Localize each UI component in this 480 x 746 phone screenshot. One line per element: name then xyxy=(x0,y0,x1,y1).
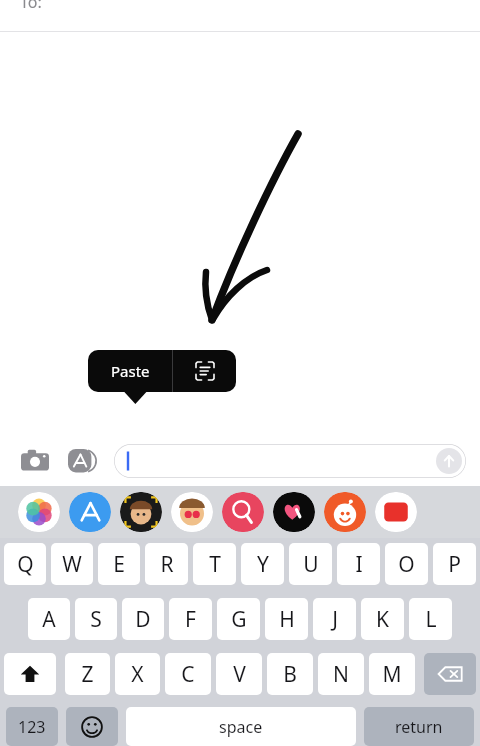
button[interactable]: App 4 xyxy=(222,492,264,532)
button[interactable]: Apps xyxy=(66,444,100,478)
button[interactable]: App 5 xyxy=(273,492,315,532)
staticText: M xyxy=(382,660,402,689)
staticText: Paste xyxy=(111,361,150,381)
button[interactable]: Scan text xyxy=(173,350,236,392)
button[interactable]: D xyxy=(122,598,164,640)
button[interactable]: O xyxy=(385,543,428,585)
staticText: R xyxy=(160,550,174,579)
button[interactable]: Backspace xyxy=(424,653,476,695)
button[interactable]: App 6 xyxy=(324,492,366,532)
button[interactable]: V xyxy=(216,653,262,695)
staticText: S xyxy=(90,605,102,634)
button[interactable]: U xyxy=(289,543,332,585)
button[interactable]: J xyxy=(313,598,356,640)
staticText: B xyxy=(283,660,297,689)
button[interactable]: Send xyxy=(436,448,462,474)
button[interactable]: A xyxy=(28,598,70,640)
button[interactable]: Y xyxy=(241,543,284,585)
button[interactable]: R xyxy=(145,543,188,585)
staticText: X xyxy=(131,660,144,689)
button[interactable]: Paste xyxy=(88,350,172,392)
staticText: A xyxy=(42,605,56,634)
staticText: G xyxy=(231,605,247,634)
staticText: E xyxy=(113,550,125,579)
button[interactable]: H xyxy=(265,598,308,640)
button[interactable]: P xyxy=(433,543,476,585)
staticText: W xyxy=(62,550,82,579)
staticText: I xyxy=(355,550,363,579)
button[interactable]: T xyxy=(193,543,236,585)
staticText: D xyxy=(135,605,151,634)
button[interactable]: E xyxy=(98,543,140,585)
button[interactable]: F xyxy=(169,598,212,640)
button[interactable]: App 0 xyxy=(18,492,60,532)
button[interactable]: L xyxy=(409,598,452,640)
staticText: To: xyxy=(20,0,42,13)
button[interactable]: Send xyxy=(114,444,466,478)
staticText: V xyxy=(233,660,246,689)
button[interactable]: K xyxy=(361,598,404,640)
staticText: Z xyxy=(81,660,94,689)
button[interactable]: space xyxy=(126,707,356,746)
button[interactable]: Camera xyxy=(18,444,52,478)
button[interactable]: App 2 xyxy=(120,492,162,532)
staticText: P xyxy=(448,550,461,579)
staticText: H xyxy=(279,605,295,634)
button[interactable]: return xyxy=(364,707,474,746)
button[interactable]: M xyxy=(369,653,415,695)
staticText: U xyxy=(303,550,319,579)
button[interactable]: S xyxy=(75,598,117,640)
button[interactable]: Emoji xyxy=(66,707,118,746)
button[interactable]: G xyxy=(217,598,260,640)
staticText: C xyxy=(181,660,195,689)
staticText: N xyxy=(333,660,349,689)
button[interactable]: Z xyxy=(65,653,110,695)
button[interactable]: App 7 xyxy=(375,492,417,532)
button[interactable]: Shift xyxy=(4,653,56,695)
button[interactable]: Q xyxy=(4,543,46,585)
button[interactable]: N xyxy=(318,653,364,695)
button[interactable]: B xyxy=(267,653,313,695)
button[interactable]: C xyxy=(165,653,211,695)
staticText: O xyxy=(398,550,415,579)
staticText: L xyxy=(425,605,437,634)
button[interactable]: App 1 xyxy=(69,492,111,532)
button[interactable]: I xyxy=(337,543,380,585)
staticText: Q xyxy=(17,550,34,579)
staticText: space xyxy=(219,716,263,738)
staticText: J xyxy=(332,605,338,634)
staticText: Y xyxy=(257,550,269,579)
staticText: return xyxy=(395,716,443,738)
button[interactable]: X xyxy=(115,653,160,695)
staticText: K xyxy=(376,605,389,634)
button[interactable]: 123 xyxy=(6,707,58,746)
staticText: 123 xyxy=(18,716,46,738)
staticText: T xyxy=(209,550,221,579)
button[interactable]: W xyxy=(51,543,93,585)
button[interactable]: App 3 xyxy=(171,492,213,532)
staticText: F xyxy=(185,605,196,634)
